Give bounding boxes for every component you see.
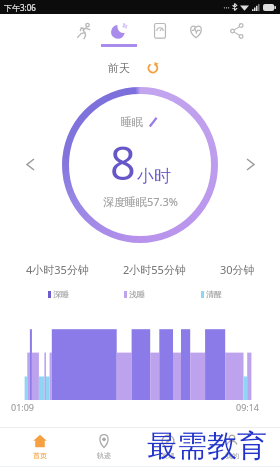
button[interactable]: 发现: [136, 428, 200, 466]
staticText: 轨迹: [97, 451, 111, 460]
button[interactable]: 清醒: [201, 289, 222, 299]
staticText: 我的: [225, 451, 239, 460]
button[interactable]: 首页: [8, 428, 72, 466]
staticText: 前天: [108, 61, 130, 75]
button[interactable]: Refresh: [146, 61, 160, 75]
button[interactable]: 浅睡: [124, 289, 145, 299]
button[interactable]: 轨迹: [72, 428, 136, 466]
staticText: 深度睡眠57.3%: [103, 194, 178, 209]
staticText: 30分钟: [220, 262, 255, 277]
button[interactable]: 我的: [200, 428, 264, 466]
staticText: 09:14: [236, 401, 260, 413]
staticText: 发现: [161, 451, 175, 460]
staticText: 8: [110, 132, 136, 193]
staticText: 清醒: [206, 289, 222, 299]
staticText: 首页: [33, 451, 47, 460]
staticText: 深睡: [53, 289, 69, 299]
button[interactable]: Weight: [142, 18, 178, 48]
staticText: 下午3:06: [4, 2, 36, 13]
staticText: 2小时55分钟: [123, 262, 186, 277]
staticText: 4小时35分钟: [26, 262, 89, 277]
button[interactable]: Heart rate: [178, 18, 214, 48]
staticText: 最需教育: [147, 427, 267, 465]
button[interactable]: Previous day: [18, 152, 42, 176]
button[interactable]: Steps: [66, 18, 102, 48]
staticText: 01:09: [11, 401, 35, 413]
staticText: 小时: [137, 166, 171, 187]
staticText: 睡眠: [121, 115, 143, 129]
button[interactable]: Sleep: [101, 18, 137, 48]
button[interactable]: Next day: [238, 152, 262, 176]
button[interactable]: Share: [219, 18, 255, 48]
button[interactable]: Edit: [148, 117, 158, 127]
button[interactable]: 深睡: [48, 289, 69, 299]
staticText: 浅睡: [129, 289, 145, 299]
